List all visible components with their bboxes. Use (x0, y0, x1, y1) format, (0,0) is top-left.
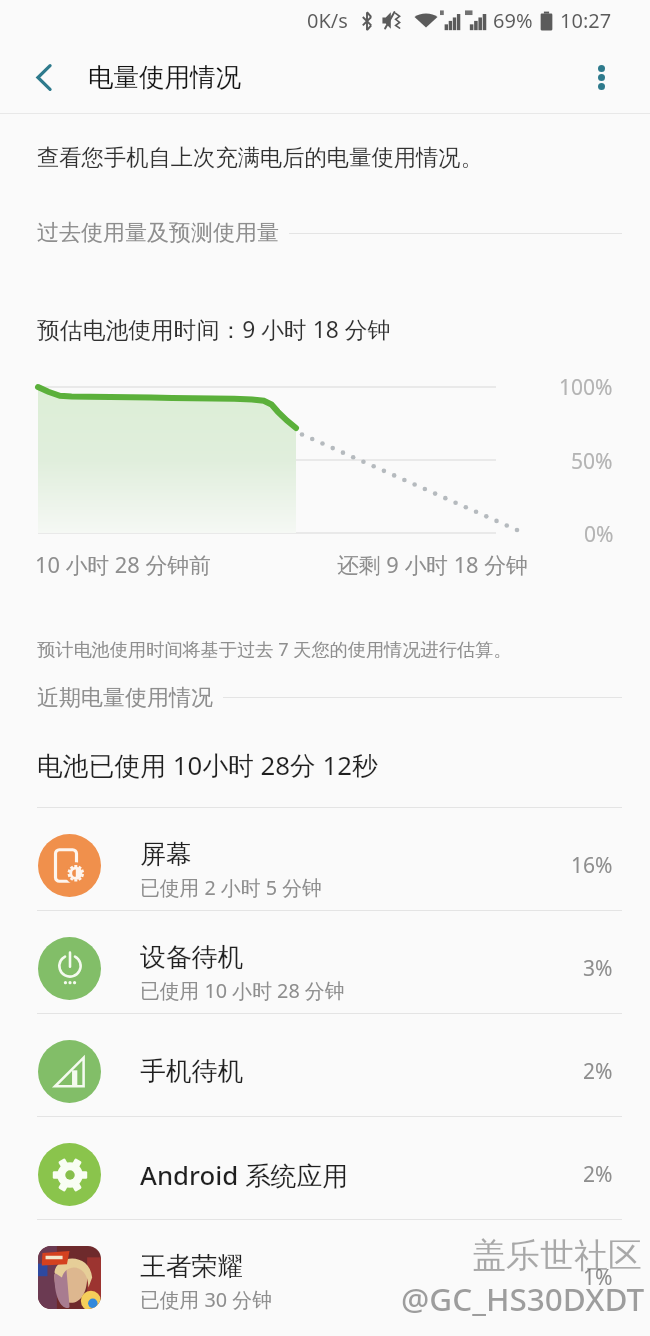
button[interactable]: 王者荣耀 (0, 1220, 650, 1322)
staticText: 电量使用情况 (88, 61, 241, 93)
staticText: 10 小时 28 分钟前 (35, 550, 211, 580)
staticText: 50% (571, 447, 613, 476)
staticText: 1% (583, 1263, 613, 1292)
staticText: 还剩 9 小时 18 分钟 (337, 550, 528, 580)
button[interactable]: Android 系统应用 (0, 1117, 650, 1219)
staticText: 过去使用量及预测使用量 (37, 219, 279, 247)
staticText: 100% (559, 373, 613, 402)
staticText: 预估电池使用时间：9 小时 18 分钟 (37, 314, 391, 345)
staticText: 电池已使用 10小时 28分 12秒 (37, 747, 378, 782)
staticText: 设备待机 (140, 941, 244, 974)
staticText: Android 系统应用 (140, 1157, 349, 1192)
button[interactable]: More options (552, 41, 650, 113)
button[interactable]: Back (0, 41, 88, 113)
staticText: 0% (584, 520, 614, 549)
staticText: 10:27 (560, 7, 612, 34)
staticText: 查看您手机自上次充满电后的电量使用情况。 (37, 144, 483, 172)
staticText: 预计电池使用时间将基于过去 7 天您的使用情况进行估算。 (37, 637, 512, 662)
staticText: 2% (583, 1160, 613, 1189)
staticText: 0K/s (307, 7, 348, 34)
staticText: 2% (583, 1057, 613, 1086)
staticText: 盖乐世社区 (472, 1234, 642, 1277)
staticText: 近期电量使用情况 (37, 684, 213, 712)
staticText: 屏幕 (140, 838, 192, 871)
staticText: 已使用 2 小时 5 分钟 (140, 874, 322, 901)
staticText: 69% (493, 7, 533, 34)
button[interactable]: 屏幕 (0, 808, 650, 910)
staticText: 16% (571, 851, 613, 880)
staticText: 已使用 30 分钟 (140, 1286, 272, 1313)
button[interactable]: 设备待机 (0, 911, 650, 1013)
staticText: 已使用 10 小时 28 分钟 (140, 977, 345, 1004)
staticText: 手机待机 (140, 1055, 244, 1088)
staticText: 3% (583, 954, 613, 983)
staticText: @GC_HS30DXDT (401, 1277, 645, 1320)
staticText: 王者荣耀 (140, 1250, 244, 1283)
button[interactable]: 手机待机 (0, 1014, 650, 1116)
